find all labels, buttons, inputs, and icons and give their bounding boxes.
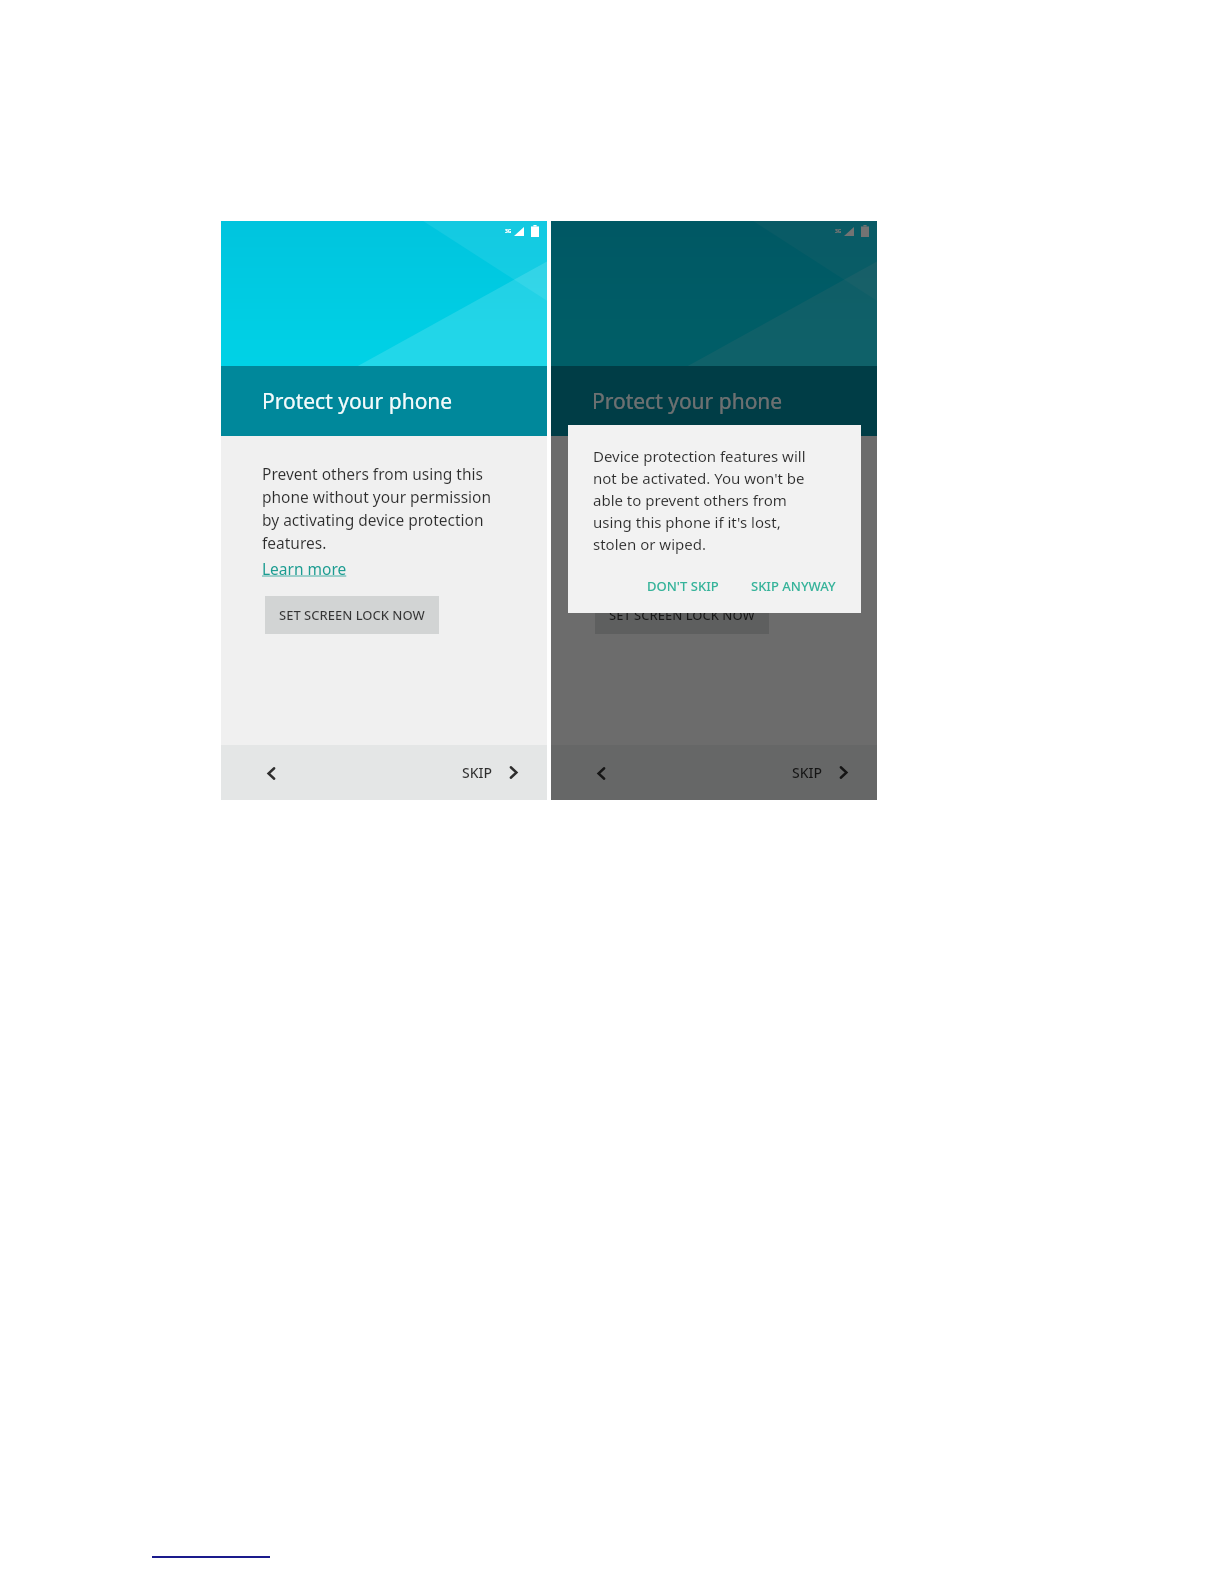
- staticText: Device protection features will not be a…: [593, 446, 806, 555]
- staticText: SKIP: [792, 763, 823, 782]
- staticText: SET SCREEN LOCK NOW: [279, 606, 425, 624]
- button[interactable]: Learn more: [262, 558, 347, 579]
- staticText: Prevent others from using this phone wit…: [262, 463, 492, 554]
- button[interactable]: SET SCREEN LOCK NOW: [265, 596, 439, 634]
- staticText: DON'T SKIP: [647, 577, 719, 595]
- button[interactable]: SKIP: [458, 757, 525, 788]
- staticText: Prevent others from using this phone wit…: [592, 463, 822, 554]
- staticText: 3G: [835, 228, 842, 235]
- button[interactable]: SKIP ANYWAY: [742, 571, 845, 601]
- staticText: SKIP: [462, 763, 493, 782]
- staticText: SKIP ANYWAY: [751, 577, 836, 595]
- button[interactable]: Back: [584, 756, 618, 790]
- button[interactable]: Back: [254, 756, 288, 790]
- button[interactable]: DON'T SKIP: [638, 571, 728, 601]
- button[interactable]: SET SCREEN LOCK NOW: [595, 596, 769, 634]
- staticText: 3G: [505, 228, 512, 235]
- staticText: Protect your phone: [592, 387, 783, 416]
- button[interactable]: SKIP: [788, 757, 855, 788]
- staticText: Protect your phone: [262, 387, 453, 416]
- staticText: SET SCREEN LOCK NOW: [609, 606, 755, 624]
